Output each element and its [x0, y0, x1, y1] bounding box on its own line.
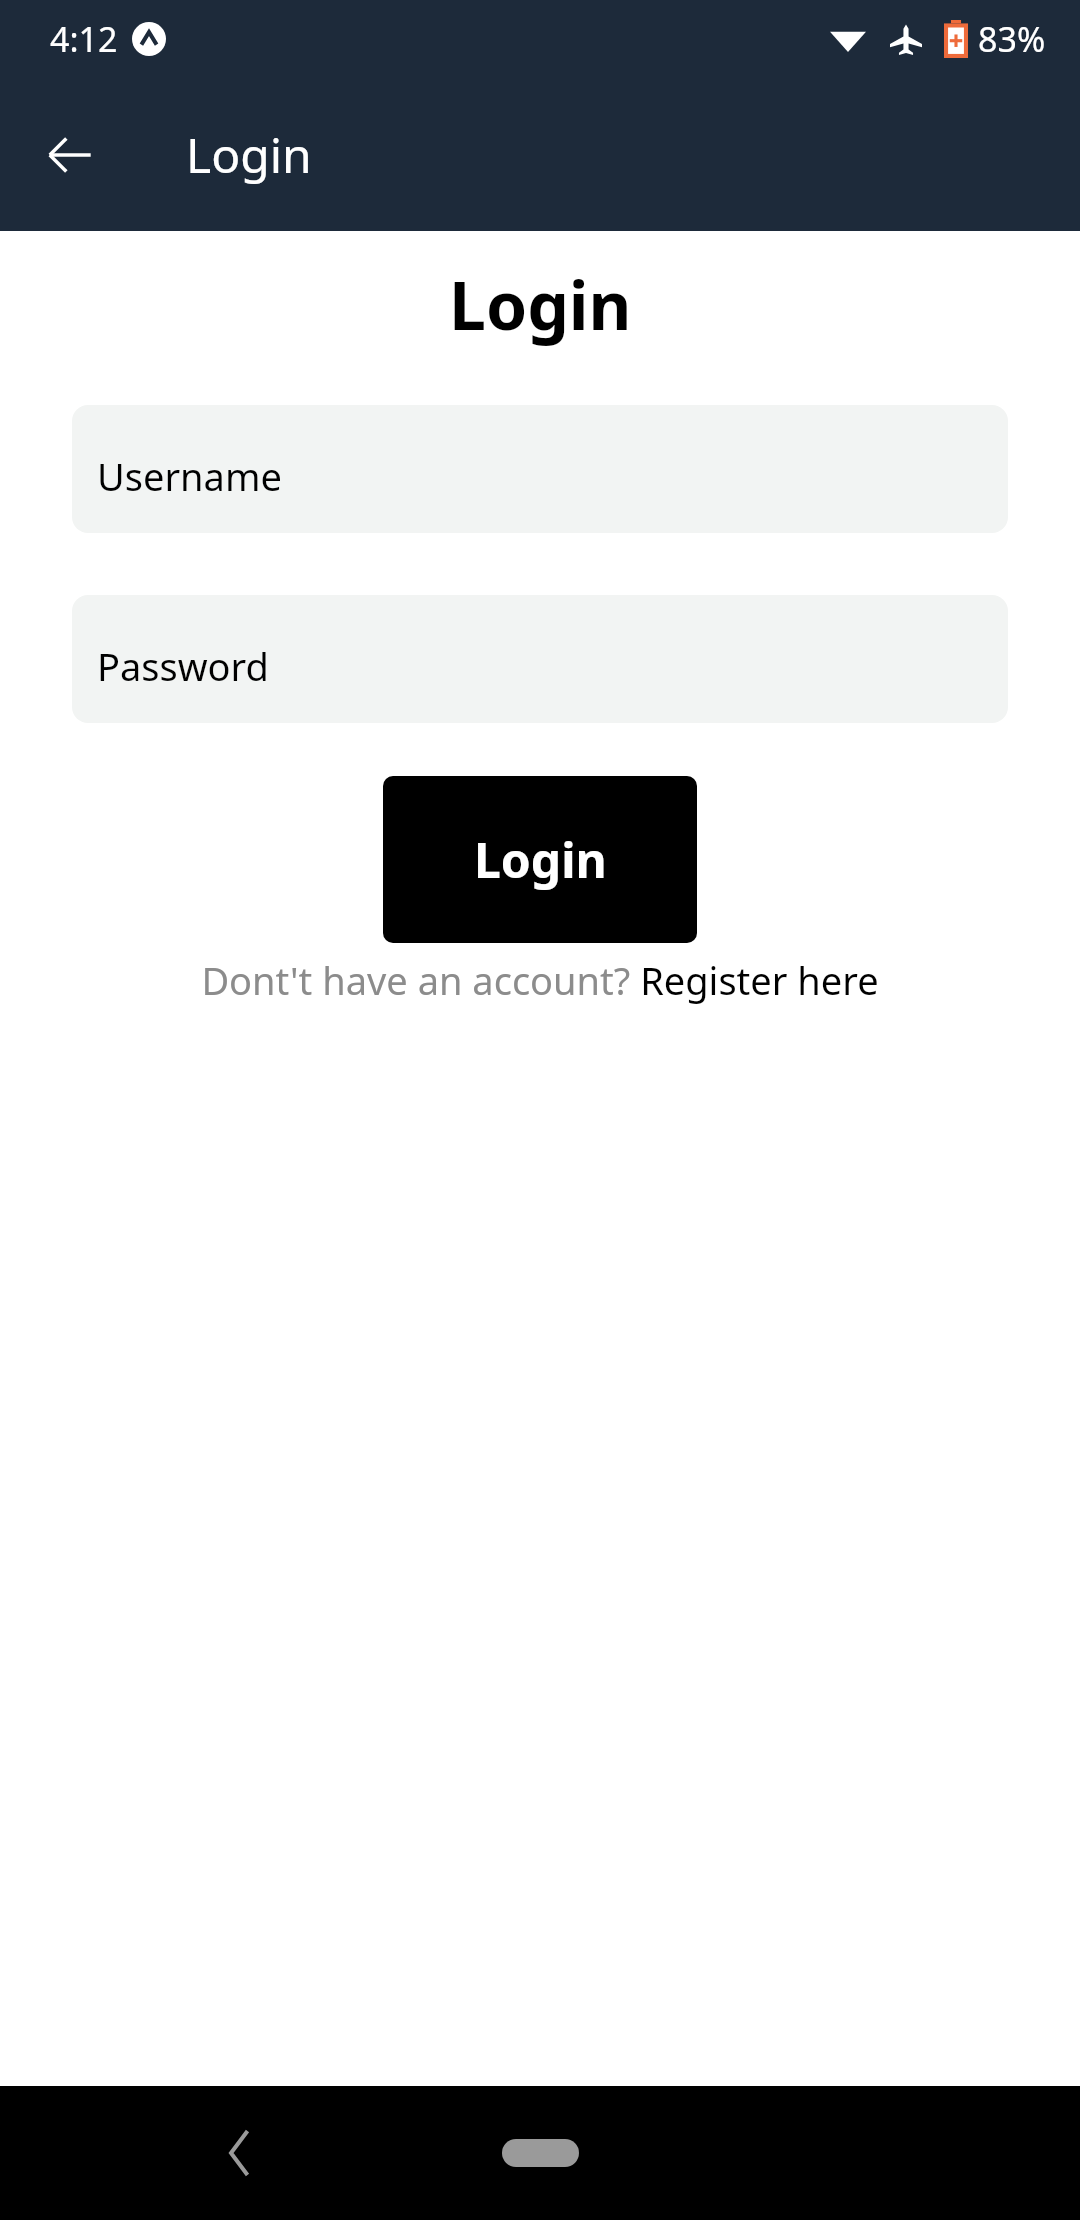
- button[interactable]: Login: [383, 776, 697, 943]
- staticText: Dont't have an account? Register here: [201, 954, 879, 1006]
- staticText: Login: [474, 827, 607, 892]
- staticText: 83%: [978, 16, 1046, 62]
- button[interactable]: Dont't have an account? Register here: [0, 954, 1080, 1006]
- button[interactable]: Password: [72, 595, 1008, 723]
- staticText: Username: [97, 450, 282, 502]
- staticText: Login: [449, 259, 632, 349]
- button[interactable]: Username: [72, 405, 1008, 533]
- staticText: Password: [97, 640, 269, 692]
- staticText: 4:12: [50, 16, 118, 62]
- button[interactable]: Back: [28, 113, 112, 197]
- button[interactable]: Back: [190, 2103, 290, 2203]
- button[interactable]: Home: [502, 2139, 579, 2167]
- staticText: Login: [186, 122, 312, 187]
